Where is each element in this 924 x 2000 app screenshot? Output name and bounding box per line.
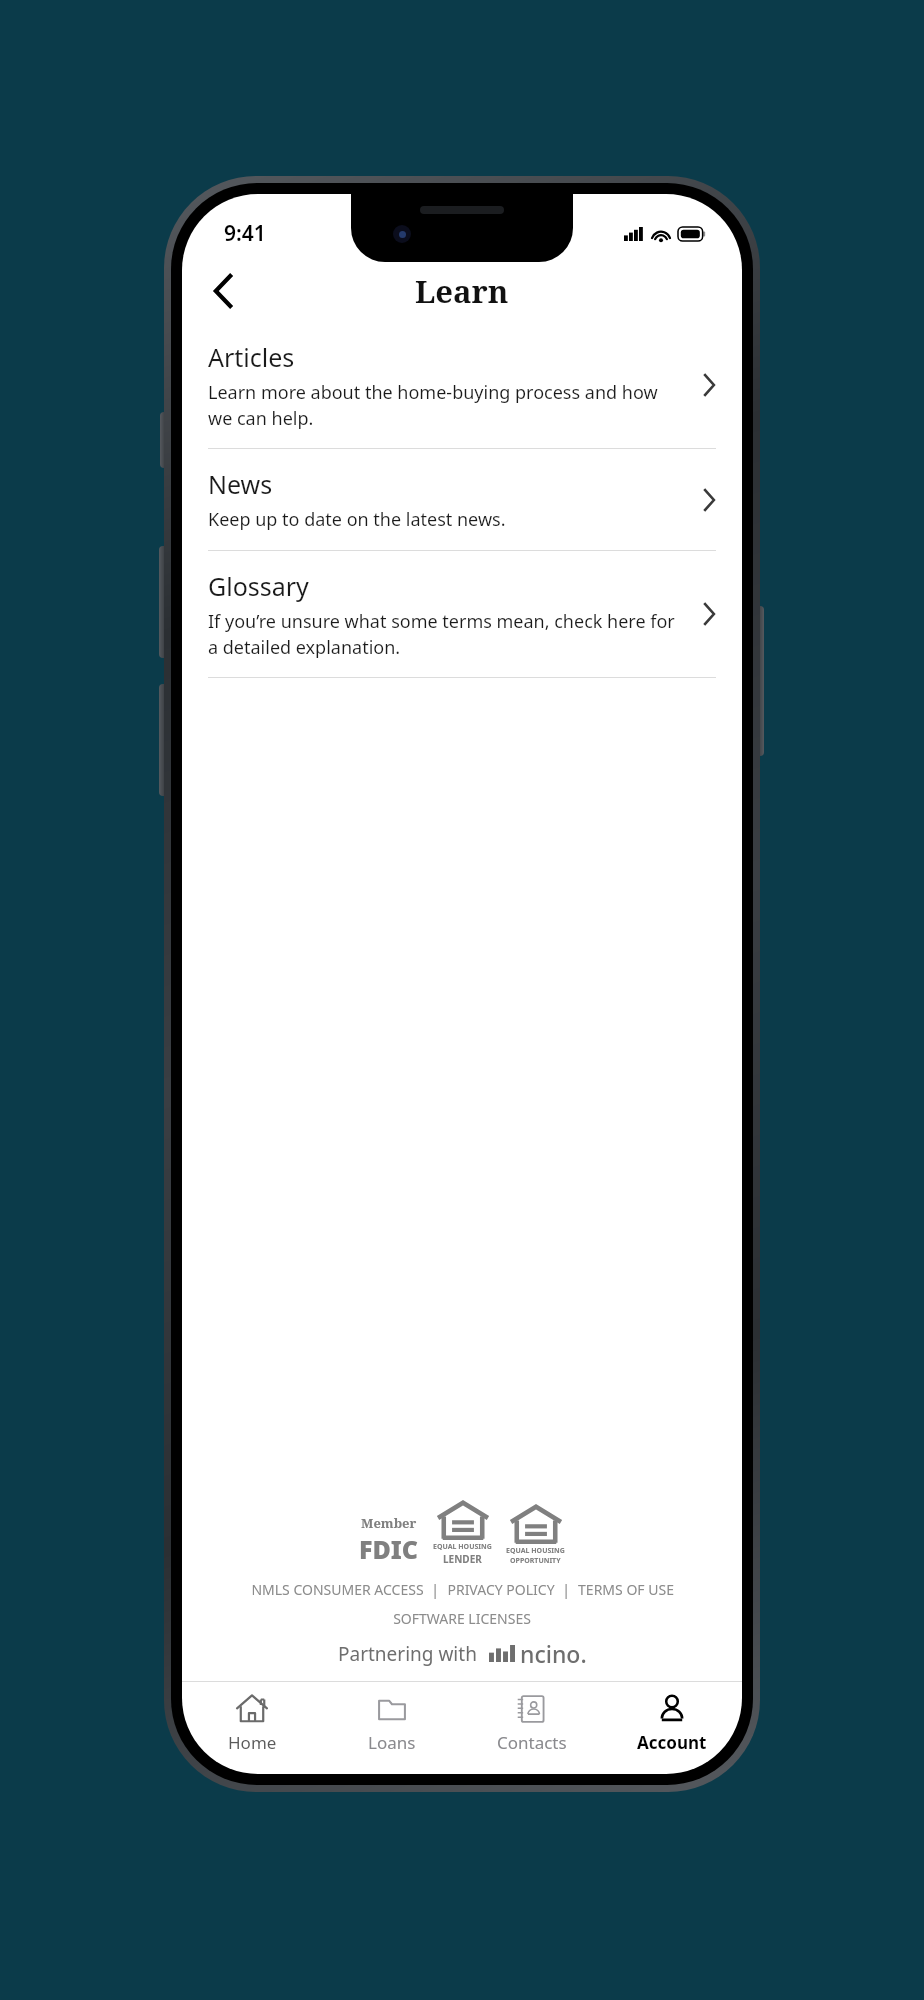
staticText: Learn more about the home-buying process… (208, 380, 684, 430)
staticText: NMLS CONSUMER ACCESS (251, 1580, 424, 1599)
button[interactable]: NMLS CONSUMER ACCESS (251, 1580, 424, 1599)
staticText: EQUAL HOUSING (433, 1542, 492, 1552)
button[interactable]: TERMS OF USE (578, 1580, 674, 1599)
staticText: Keep up to date on the latest news. (208, 507, 506, 532)
staticText: Account (637, 1731, 707, 1754)
button[interactable]: Loans (322, 1682, 462, 1774)
staticText: OPPORTUNITY (510, 1556, 561, 1566)
staticText: EQUAL HOUSING (506, 1546, 565, 1556)
staticText: 9:41 (224, 219, 266, 248)
staticText: SOFTWARE LICENSES (393, 1609, 531, 1628)
button[interactable]: SOFTWARE LICENSES (393, 1609, 531, 1628)
button[interactable]: News (182, 449, 742, 550)
staticText: Learn (415, 270, 509, 312)
staticText: Articles (208, 340, 295, 374)
staticText: PRIVACY POLICY (447, 1580, 555, 1599)
staticText: News (208, 467, 273, 501)
staticText: Member (361, 1514, 417, 1532)
staticText: TERMS OF USE (578, 1580, 674, 1599)
button[interactable]: PRIVACY POLICY (447, 1580, 555, 1599)
staticText: If you’re unsure what some terms mean, c… (208, 609, 684, 659)
staticText: Loans (368, 1731, 416, 1754)
button[interactable]: Articles (182, 322, 742, 448)
staticText: Glossary (208, 569, 309, 603)
button[interactable]: Back (196, 264, 250, 318)
button[interactable]: Home (182, 1682, 322, 1774)
staticText: Contacts (497, 1731, 567, 1754)
staticText: Partnering with (338, 1641, 477, 1667)
button[interactable]: Glossary (182, 551, 742, 677)
staticText: | (424, 1580, 447, 1599)
button[interactable]: Account (602, 1682, 742, 1774)
staticText: LENDER (443, 1552, 482, 1566)
staticText: Home (228, 1731, 277, 1754)
staticText: ncino. (520, 1638, 587, 1669)
button[interactable]: Contacts (462, 1682, 602, 1774)
staticText: FDIC (359, 1532, 419, 1566)
staticText: | (555, 1580, 578, 1599)
